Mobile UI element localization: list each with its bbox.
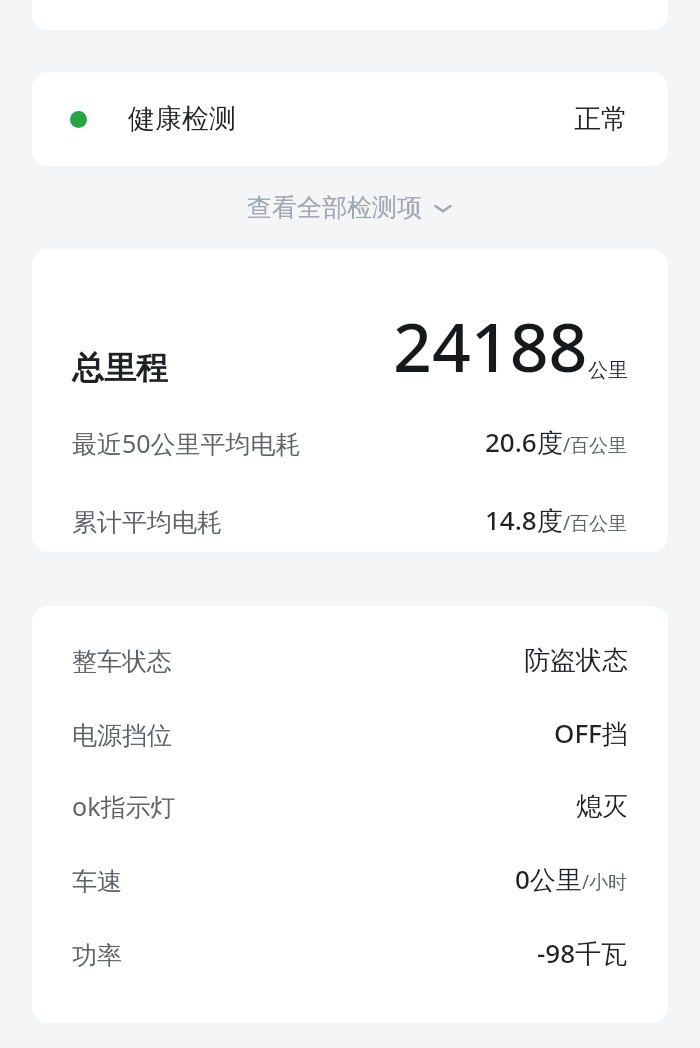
staticText: /百公里	[563, 510, 628, 536]
staticText: 查看全部检测项	[247, 192, 422, 223]
staticText: 累计平均电耗	[72, 507, 222, 538]
staticText: 24188	[393, 299, 588, 392]
button[interactable]: 车速	[72, 861, 628, 897]
staticText: ok指示灯	[72, 789, 176, 823]
staticText: /百公里	[563, 432, 628, 458]
staticText: 车速	[72, 866, 122, 897]
button[interactable]: 功率	[72, 935, 628, 971]
staticText: 防盗状态	[524, 644, 628, 677]
button[interactable]: 整车状态	[72, 644, 628, 677]
staticText: 健康检测	[128, 102, 236, 136]
staticText: 总里程	[72, 348, 168, 388]
staticText: OFF挡	[554, 715, 628, 751]
staticText: 整车状态	[72, 646, 172, 677]
button[interactable]: 健康检测	[32, 72, 668, 166]
button[interactable]: 最近50公里平均电耗	[72, 424, 628, 460]
staticText: -98千瓦	[537, 935, 628, 971]
staticText: 熄灭	[576, 790, 628, 823]
button[interactable]: 电源挡位	[72, 715, 628, 751]
staticText: 14.8度	[485, 502, 563, 538]
staticText: 电源挡位	[72, 720, 172, 751]
staticText: 功率	[72, 940, 122, 971]
staticText: 最近50公里平均电耗	[72, 426, 301, 460]
staticText: 正常	[574, 102, 628, 136]
button[interactable]: 查看全部检测项	[0, 166, 700, 249]
staticText: 20.6度	[485, 424, 563, 460]
button[interactable]: ok指示灯	[72, 789, 628, 823]
staticText: 0公里	[515, 861, 582, 897]
staticText: 公里	[588, 358, 628, 383]
staticText: /小时	[582, 869, 628, 895]
button[interactable]: 总里程	[32, 249, 668, 552]
button[interactable]: 累计平均电耗	[72, 502, 628, 538]
